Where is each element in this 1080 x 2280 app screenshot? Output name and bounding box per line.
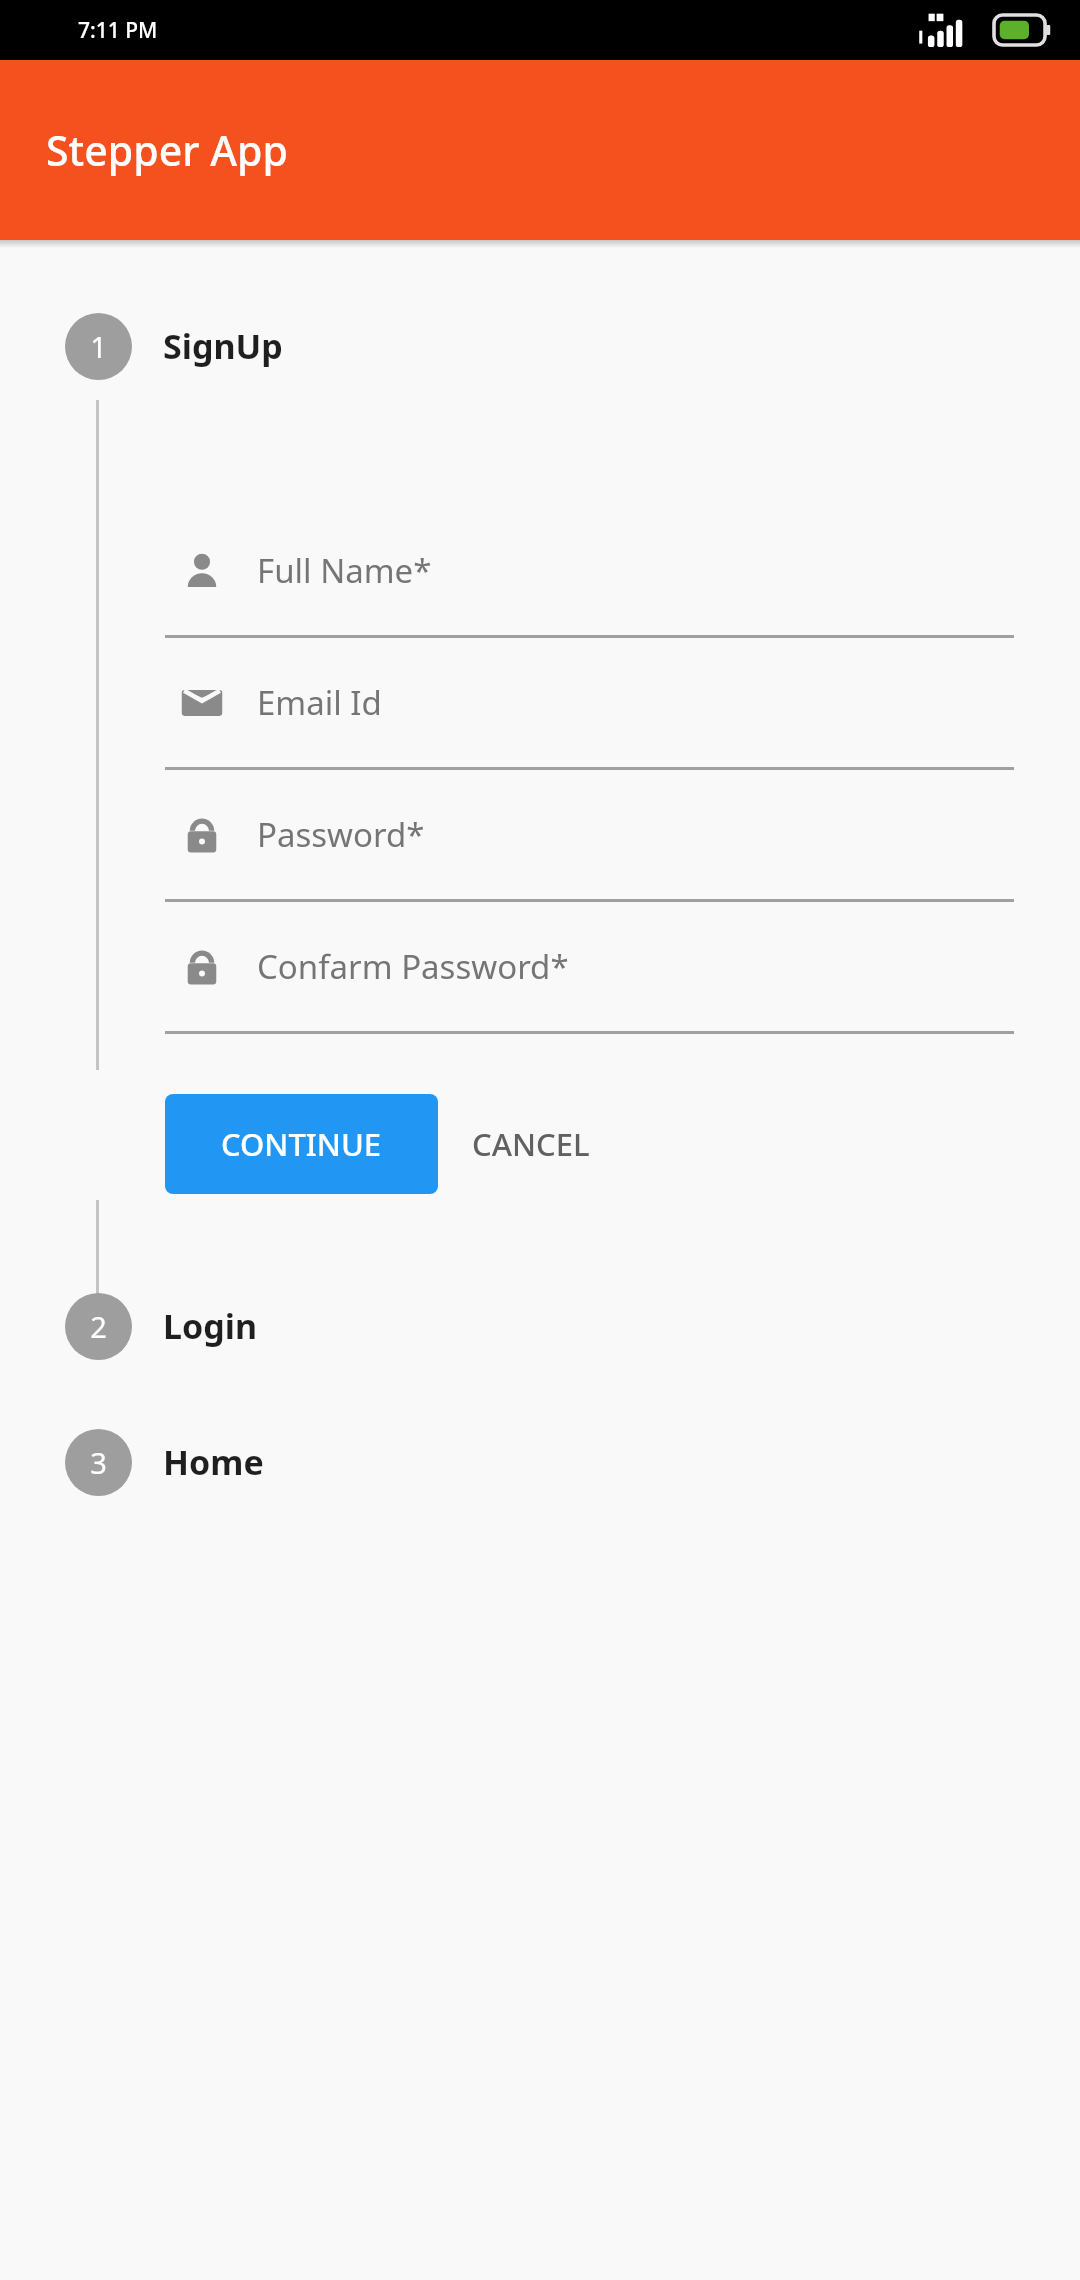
staticText: CANCEL [472,1123,590,1165]
staticText: 1 [90,327,107,366]
staticText: 2 [90,1307,107,1346]
staticText: 7:11 PM [78,16,158,45]
button[interactable]: Password* [165,770,1014,902]
button[interactable]: CANCEL [438,1094,624,1194]
staticText: Home [163,1439,264,1485]
staticText: Login [163,1303,258,1349]
staticText: Email Id [257,680,382,725]
staticText: Password* [257,812,425,857]
button[interactable]: Email Id [165,638,1014,770]
staticText: SignUp [163,323,283,369]
staticText: Stepper App [46,122,288,178]
button[interactable]: Full Name* [165,506,1014,638]
staticText: CONTINUE [221,1123,382,1165]
button[interactable]: Confarm Password* [165,902,1014,1034]
button[interactable]: 2 [65,1292,258,1360]
staticText: 3 [90,1443,107,1482]
staticText: Confarm Password* [257,944,569,989]
button[interactable]: 1 [65,312,283,380]
button[interactable]: 3 [65,1428,264,1496]
button[interactable]: CONTINUE [165,1094,438,1194]
staticText: Full Name* [257,548,432,593]
